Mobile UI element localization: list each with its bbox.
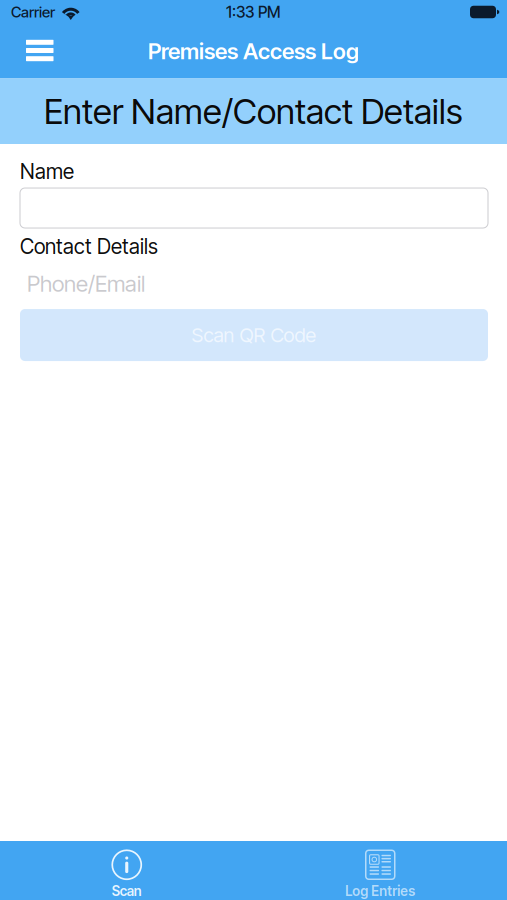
button[interactable]: Scan QR Code (20, 309, 488, 361)
button[interactable]: Log Entries (253, 850, 507, 899)
button[interactable]: Scan (0, 850, 253, 899)
staticText: Contact Details (20, 234, 158, 259)
staticText: Premises Access Log (148, 38, 359, 65)
staticText: 1:33 PM (226, 2, 281, 21)
staticText: Enter Name/Contact Details (44, 90, 463, 132)
button[interactable]: Phone/Email text field (20, 270, 488, 297)
staticText: Scan QR Code (191, 323, 316, 347)
staticText: Name (20, 159, 74, 184)
staticText: Carrier (11, 3, 55, 21)
staticText: Phone/Email (27, 270, 145, 297)
button[interactable]: Name text field (20, 188, 488, 228)
staticText: Log Entries (345, 883, 415, 899)
button[interactable]: Menu (0, 24, 69, 78)
staticText: Scan (112, 883, 142, 899)
